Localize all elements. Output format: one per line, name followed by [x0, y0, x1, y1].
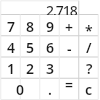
staticText: 6 — [46, 38, 55, 57]
staticText: c — [85, 80, 93, 99]
button[interactable]: - — [59, 36, 79, 57]
staticText: 8 — [26, 17, 35, 36]
button[interactable]: 9 — [40, 15, 60, 36]
staticText: 2 — [26, 59, 35, 78]
staticText: . — [48, 80, 52, 99]
button[interactable]: 3 — [40, 57, 60, 78]
staticText: 1 — [7, 59, 16, 78]
button[interactable]: 8 — [20, 15, 40, 36]
button[interactable]: 7 — [1, 15, 21, 36]
staticText: 0 — [16, 80, 25, 99]
button[interactable]: 2 — [20, 57, 40, 78]
button[interactable]: ? — [79, 57, 99, 78]
button[interactable]: 6 — [40, 36, 60, 57]
button[interactable]: = — [59, 78, 79, 99]
button[interactable]: / — [79, 36, 99, 57]
staticText: 3 — [46, 59, 55, 78]
button[interactable]: c — [79, 78, 99, 99]
button[interactable]: 0 — [1, 78, 40, 99]
staticText: 5 — [26, 38, 35, 57]
button[interactable]: + — [59, 15, 79, 36]
button[interactable]: 4 — [1, 36, 21, 57]
staticText: ? — [86, 59, 93, 78]
staticText: + — [65, 18, 74, 37]
staticText: * — [85, 21, 93, 40]
button[interactable]: 5 — [20, 36, 40, 57]
staticText: = — [65, 75, 74, 94]
button[interactable]: . — [40, 78, 60, 99]
staticText: 4 — [7, 38, 16, 57]
staticText: 2.718 — [46, 1, 77, 15]
button[interactable]: 1 — [1, 57, 21, 78]
staticText: 9 — [46, 17, 55, 36]
button[interactable]: * — [79, 15, 99, 36]
staticText: / — [86, 38, 92, 57]
staticText: - — [67, 39, 72, 58]
staticText: 7 — [7, 17, 16, 36]
